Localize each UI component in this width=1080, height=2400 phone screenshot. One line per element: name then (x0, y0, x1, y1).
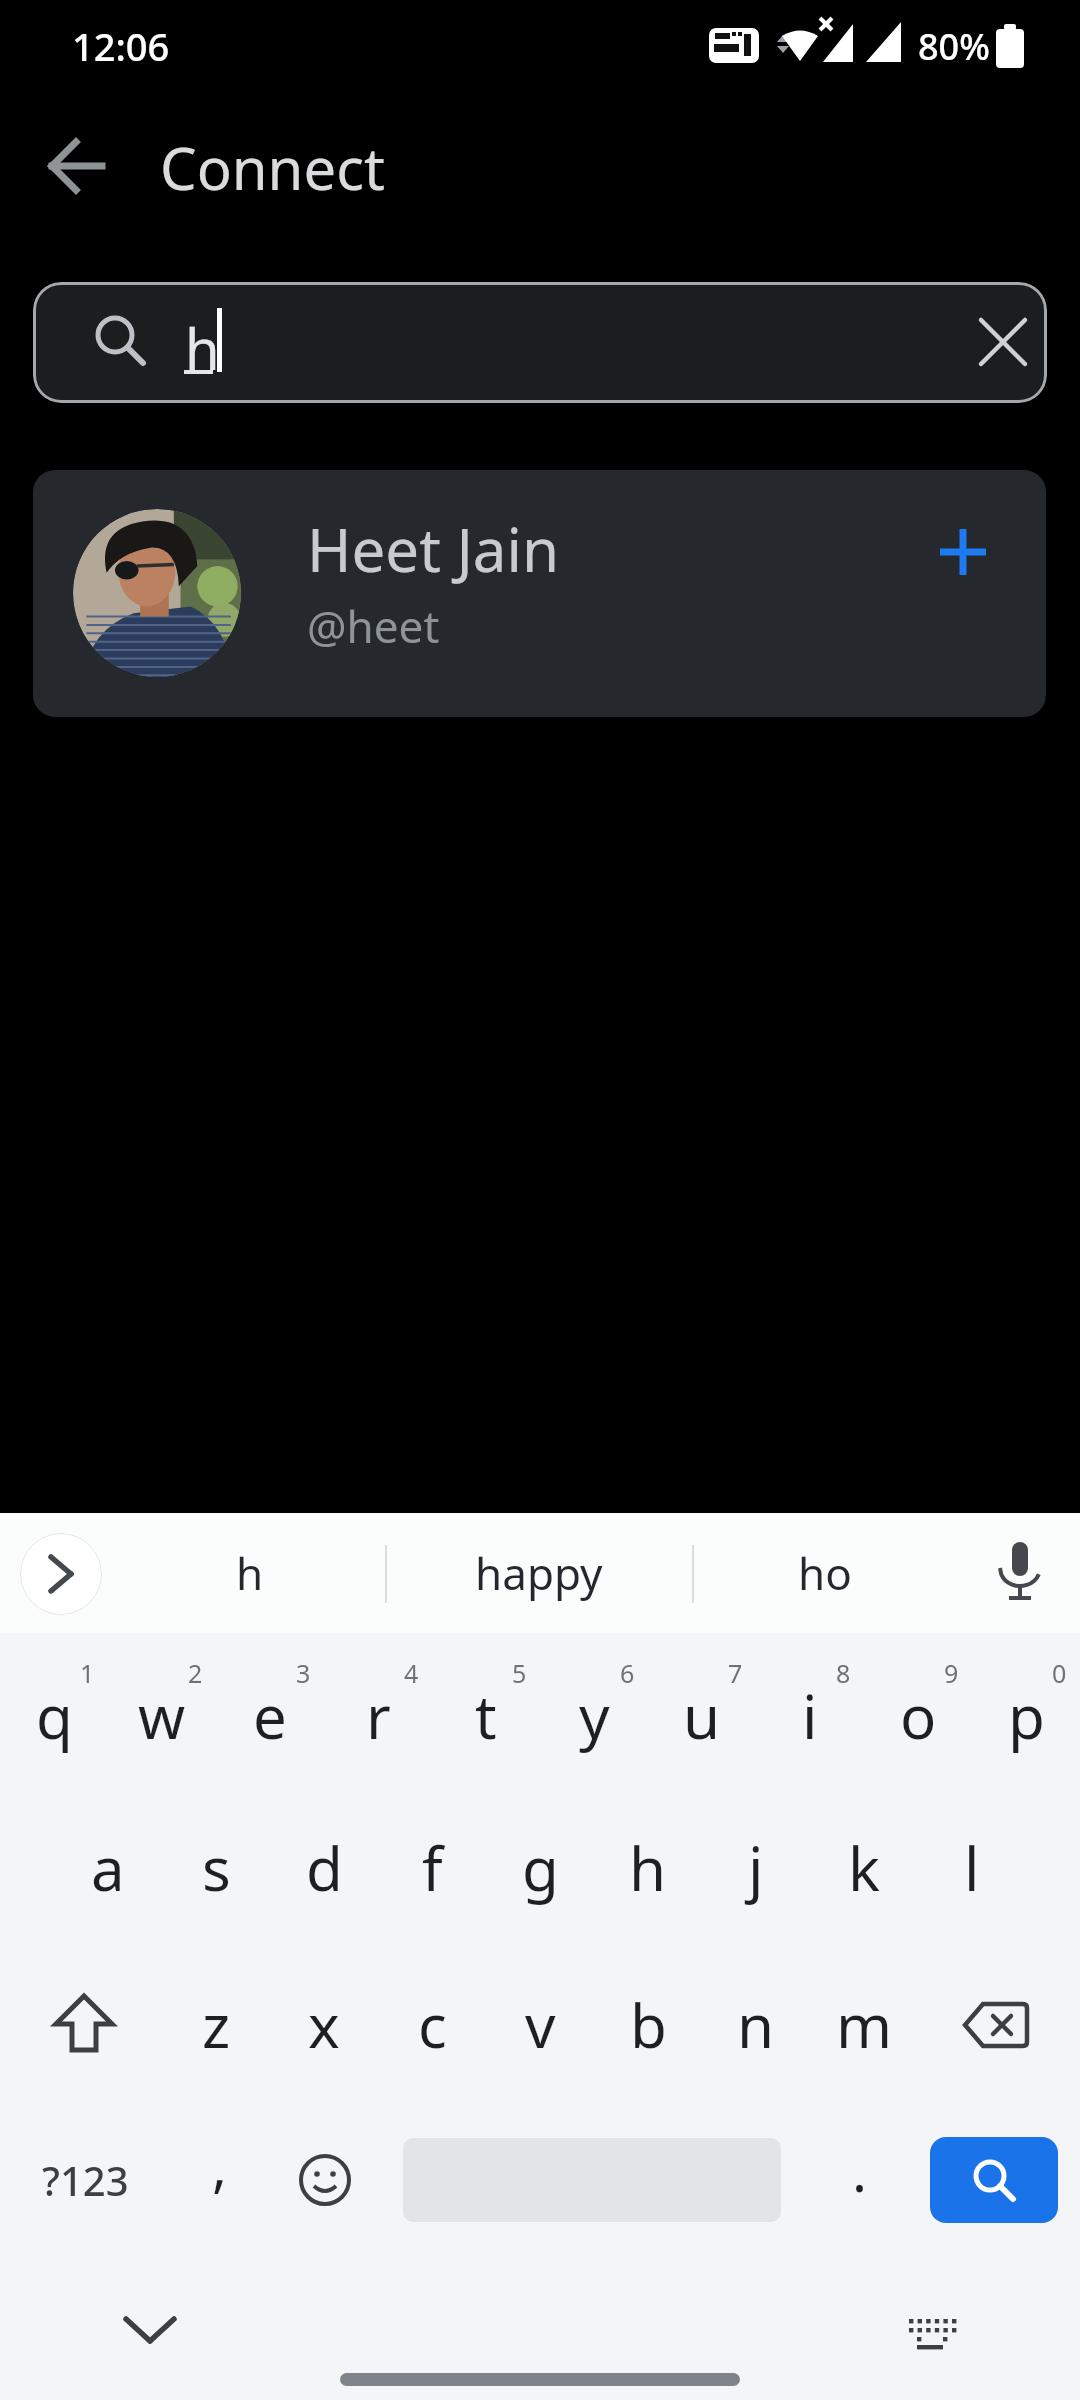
staticText: 7 (728, 1656, 743, 1690)
button[interactable]: k (810, 1808, 918, 1928)
staticText: 12:06 (72, 20, 170, 72)
staticText: h (629, 1827, 667, 1909)
button[interactable]: p (972, 1656, 1080, 1776)
staticText: h (236, 1543, 264, 1603)
button[interactable]: Heet Jain (33, 470, 1046, 717)
button[interactable]: m (810, 1965, 918, 2085)
button[interactable]: r (324, 1656, 432, 1776)
button[interactable] (20, 1533, 102, 1615)
staticText: r (366, 1675, 391, 1757)
staticText: Connect (160, 128, 385, 207)
button[interactable]: f (378, 1808, 486, 1928)
staticText: 6 (620, 1656, 635, 1690)
staticText: g (522, 1827, 559, 1909)
button[interactable]: n (702, 1965, 810, 2085)
staticText: s (202, 1827, 231, 1909)
button[interactable]: w (108, 1656, 216, 1776)
staticText: 1 (80, 1656, 95, 1690)
button[interactable]: ?123 (25, 2120, 145, 2240)
button[interactable]: o (864, 1656, 972, 1776)
button[interactable]: h (594, 1808, 702, 1928)
button[interactable] (24, 1965, 144, 2085)
staticText: @heet (307, 596, 440, 656)
button[interactable]: i (756, 1656, 864, 1776)
staticText: h (185, 310, 220, 386)
button[interactable]: x (270, 1965, 378, 2085)
button[interactable]: , (166, 2105, 274, 2225)
button[interactable]: t (432, 1656, 540, 1776)
staticText: w (138, 1675, 186, 1757)
button[interactable]: h (120, 1513, 380, 1633)
button[interactable] (90, 2270, 210, 2390)
button[interactable]: e (216, 1656, 324, 1776)
button[interactable]: a (54, 1808, 162, 1928)
staticText: j (748, 1827, 764, 1909)
staticText: c (418, 1984, 447, 2066)
staticText: o (900, 1675, 937, 1757)
staticText: 80% (918, 22, 990, 71)
staticText: y (579, 1675, 610, 1757)
staticText: k (848, 1827, 881, 1909)
staticText: 8 (836, 1656, 851, 1690)
staticText: i (802, 1675, 818, 1757)
staticText: t (475, 1675, 497, 1757)
button[interactable]: d (270, 1808, 378, 1928)
staticText: e (253, 1675, 287, 1757)
staticText: x (308, 1984, 340, 2066)
button[interactable]: ho (714, 1513, 936, 1633)
button[interactable] (870, 2280, 990, 2390)
staticText: 9 (944, 1656, 959, 1690)
button[interactable]: y (540, 1656, 648, 1776)
staticText: u (683, 1675, 721, 1757)
button[interactable]: g (486, 1808, 594, 1928)
staticText: happy (475, 1543, 603, 1603)
button[interactable] (930, 2137, 1058, 2223)
button[interactable] (265, 2120, 385, 2240)
staticText: 0 (1052, 1656, 1067, 1690)
button[interactable]: q (0, 1656, 108, 1776)
button[interactable]: u (648, 1656, 756, 1776)
button[interactable]: v (486, 1965, 594, 2085)
staticText: 3 (296, 1656, 311, 1690)
button[interactable] (935, 1965, 1055, 2085)
button[interactable]: happy (387, 1513, 690, 1633)
staticText: p (1008, 1675, 1045, 1757)
button[interactable]: c (378, 1965, 486, 2085)
staticText: v (525, 1984, 556, 2066)
button[interactable]: b (594, 1965, 702, 2085)
staticText: z (202, 1984, 231, 2066)
staticText: ho (798, 1543, 852, 1603)
staticText: q (36, 1675, 73, 1757)
button[interactable] (913, 502, 1013, 602)
staticText: b (630, 1984, 667, 2066)
staticText: 5 (512, 1656, 527, 1690)
staticText: l (964, 1827, 980, 1909)
button[interactable]: z (162, 1965, 270, 2085)
button[interactable]: j (702, 1808, 810, 1928)
staticText: a (91, 1827, 125, 1909)
staticText: 4 (404, 1656, 419, 1690)
button[interactable]: h (33, 282, 1047, 403)
staticText: d (306, 1827, 343, 1909)
button[interactable] (28, 118, 124, 214)
staticText: ?123 (42, 2153, 129, 2207)
button[interactable]: l (918, 1808, 1026, 1928)
staticText: Heet Jain (307, 508, 559, 590)
staticText: f (422, 1827, 443, 1909)
staticText: , (212, 2127, 228, 2203)
button[interactable] (975, 1528, 1065, 1618)
staticText: 2 (188, 1656, 203, 1690)
button[interactable]: . (806, 2110, 914, 2230)
staticText: n (737, 1984, 775, 2066)
staticText: m (836, 1984, 893, 2066)
button[interactable]: s (162, 1808, 270, 1928)
button[interactable] (958, 297, 1047, 387)
staticText: . (852, 2132, 868, 2208)
